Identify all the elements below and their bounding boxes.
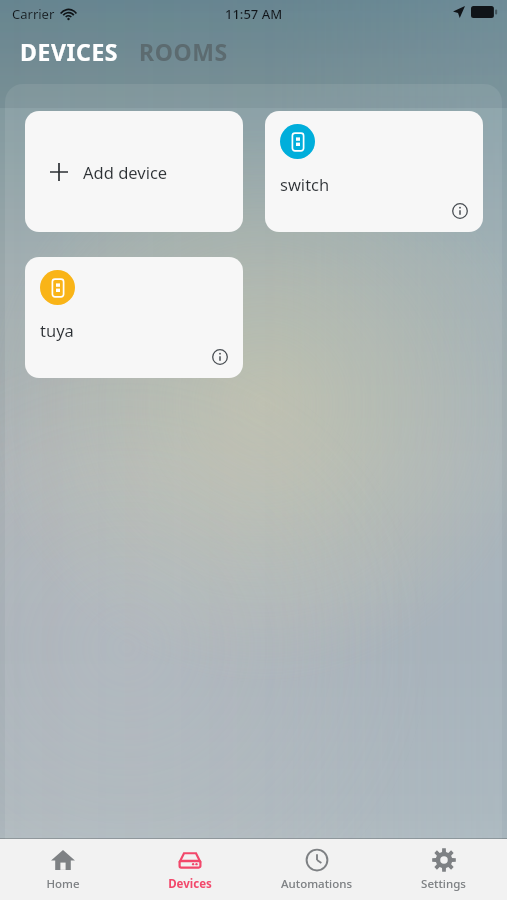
staticText: Carrier <box>12 5 55 23</box>
button[interactable]: Automations <box>253 839 380 900</box>
button[interactable]: DEVICES <box>20 36 121 67</box>
staticText: Add device <box>83 161 168 183</box>
staticText: Settings <box>421 876 466 892</box>
button[interactable]: Devices <box>126 839 253 900</box>
button[interactable]: Device info <box>205 342 235 372</box>
staticText: tuya <box>40 319 74 341</box>
button[interactable]: ROOMS <box>139 36 228 67</box>
staticText: Devices <box>168 876 212 892</box>
staticText: switch <box>280 173 330 195</box>
staticText: Home <box>46 876 80 892</box>
button[interactable]: Home <box>0 839 126 900</box>
button[interactable]: switch <box>265 111 483 232</box>
staticText: DEVICES <box>20 36 119 67</box>
staticText: ROOMS <box>139 36 228 67</box>
button[interactable]: Settings <box>380 839 507 900</box>
button[interactable]: Add device <box>25 111 243 232</box>
button[interactable]: Device info <box>445 196 475 226</box>
staticText: Automations <box>281 876 352 892</box>
staticText: 11:57 AM <box>225 5 283 23</box>
button[interactable]: tuya <box>25 257 243 378</box>
